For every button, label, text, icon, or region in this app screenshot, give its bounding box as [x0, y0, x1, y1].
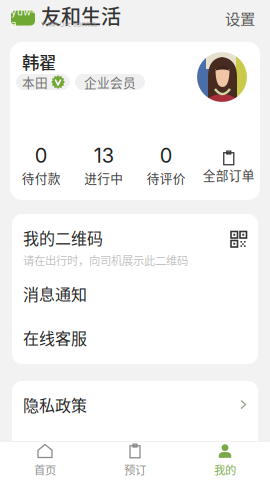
staticText: 隐私政策	[23, 393, 87, 416]
button[interactable]: 全部订单	[197, 150, 260, 180]
staticText: 企业会员	[84, 73, 136, 91]
button[interactable]: 我的	[180, 439, 270, 480]
button[interactable]: 0	[135, 143, 197, 187]
staticText: 消息通知	[23, 282, 87, 305]
button[interactable]: 隐私政策	[12, 381, 258, 428]
staticText: 13	[94, 143, 114, 168]
staticText: 我的二维码	[23, 226, 103, 249]
staticText: YUWA LIFE SERVICE	[41, 21, 97, 28]
staticText: yuwa	[11, 6, 35, 30]
button[interactable]: 0	[10, 143, 72, 187]
button[interactable]: 13	[72, 143, 135, 187]
staticText: 预订	[124, 461, 146, 478]
button[interactable]: 设置	[225, 9, 255, 27]
button[interactable]: 消息通知	[12, 271, 258, 315]
staticText: 关于我们	[23, 440, 87, 463]
button[interactable]: 在线客服	[12, 315, 258, 359]
button[interactable]: 预订	[90, 439, 180, 480]
staticText: 本田	[22, 73, 48, 91]
staticText: 首页	[34, 461, 56, 478]
staticText: 0	[160, 143, 173, 168]
staticText: 在线客服	[23, 326, 87, 349]
staticText: 进行中	[84, 169, 123, 187]
staticText: 韩翟	[22, 49, 56, 74]
staticText: 设置	[225, 7, 255, 29]
staticText: 请在出行时，向司机展示此二维码	[23, 252, 188, 268]
staticText: 待评价	[147, 169, 186, 187]
button[interactable]: 我的二维码	[12, 218, 258, 271]
staticText: 待付款	[22, 169, 61, 187]
button[interactable]: 首页	[0, 439, 90, 480]
staticText: 全部订单	[203, 166, 255, 184]
button[interactable]: 关于我们	[12, 428, 258, 475]
staticText: 我的	[214, 461, 236, 478]
staticText: 0	[35, 143, 48, 168]
staticText: 友和生活	[41, 1, 121, 30]
